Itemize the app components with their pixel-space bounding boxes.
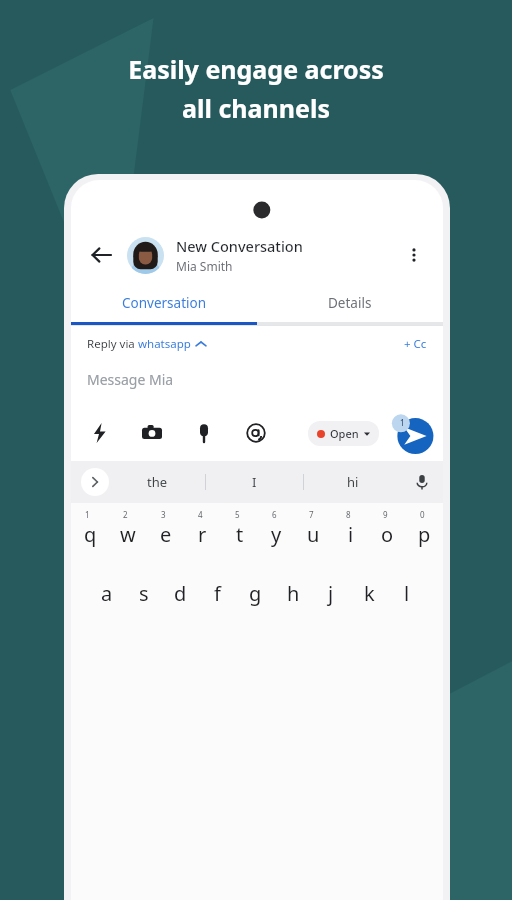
staticText: I bbox=[252, 473, 257, 491]
button[interactable]: j bbox=[312, 565, 350, 621]
staticText: o bbox=[381, 521, 394, 548]
staticText: Reply via bbox=[87, 336, 138, 352]
button[interactable]: s bbox=[125, 565, 162, 621]
button[interactable]: d bbox=[162, 565, 199, 621]
staticText: New Conversation bbox=[176, 236, 303, 256]
staticText: whatsapp bbox=[138, 336, 191, 352]
staticText: Mia Smith bbox=[176, 258, 233, 274]
button[interactable]: Camera bbox=[139, 420, 165, 446]
button[interactable]: a bbox=[88, 565, 125, 621]
staticText: 0 bbox=[420, 509, 425, 520]
button[interactable]: Send bbox=[389, 411, 433, 455]
button[interactable]: h bbox=[274, 565, 312, 621]
button[interactable]: the bbox=[109, 461, 205, 503]
button[interactable]: r bbox=[184, 503, 221, 565]
staticText: g bbox=[249, 580, 262, 607]
staticText: 9 bbox=[383, 509, 388, 520]
staticText: Open bbox=[330, 426, 359, 441]
staticText: l bbox=[404, 580, 410, 607]
staticText: 3 bbox=[161, 509, 166, 520]
staticText: d bbox=[174, 580, 187, 607]
staticText: 4 bbox=[198, 509, 203, 520]
staticText: i bbox=[348, 521, 354, 548]
staticText: y bbox=[271, 521, 282, 548]
button[interactable]: g bbox=[236, 565, 274, 621]
button[interactable]: k bbox=[350, 565, 388, 621]
button[interactable]: Details bbox=[257, 284, 443, 322]
staticText: h bbox=[287, 580, 300, 607]
staticText: the bbox=[147, 473, 168, 491]
staticText: w bbox=[120, 521, 136, 548]
button[interactable]: Back bbox=[83, 237, 119, 273]
staticText: hi bbox=[347, 473, 359, 491]
button[interactable]: u bbox=[295, 503, 332, 565]
button[interactable]: q bbox=[71, 503, 109, 565]
button[interactable]: Open bbox=[308, 421, 379, 446]
staticText: 6 bbox=[272, 509, 277, 520]
button[interactable]: Voice input bbox=[401, 461, 443, 503]
staticText: 8 bbox=[346, 509, 351, 520]
button[interactable]: l bbox=[388, 565, 426, 621]
staticText: r bbox=[198, 521, 207, 548]
button[interactable]: Mention bbox=[243, 420, 269, 446]
staticText: e bbox=[160, 521, 172, 548]
staticText: Message Mia bbox=[87, 370, 174, 389]
button[interactable]: Quick reply bbox=[87, 420, 113, 446]
button[interactable]: o bbox=[369, 503, 406, 565]
staticText: k bbox=[364, 580, 375, 607]
staticText: f bbox=[214, 580, 221, 607]
button[interactable]: Conversation bbox=[71, 284, 257, 322]
button[interactable]: Reply via bbox=[87, 336, 206, 352]
button[interactable]: hi bbox=[304, 461, 401, 503]
staticText: s bbox=[139, 580, 149, 607]
staticText: 2 bbox=[123, 509, 128, 520]
button[interactable]: p bbox=[406, 503, 443, 565]
staticText: Conversation bbox=[122, 294, 206, 312]
staticText: j bbox=[328, 580, 334, 607]
staticText: 5 bbox=[235, 509, 240, 520]
staticText: p bbox=[418, 521, 431, 548]
staticText: 1 bbox=[85, 509, 90, 520]
button[interactable]: + Cc bbox=[404, 336, 427, 352]
staticText: Details bbox=[328, 294, 372, 312]
button[interactable]: f bbox=[199, 565, 236, 621]
button[interactable]: I bbox=[206, 461, 303, 503]
staticText: u bbox=[307, 521, 320, 548]
staticText: q bbox=[84, 521, 97, 548]
staticText: a bbox=[101, 580, 113, 607]
button[interactable]: e bbox=[147, 503, 184, 565]
staticText: 7 bbox=[309, 509, 314, 520]
staticText: Easily engage across bbox=[128, 52, 384, 86]
button[interactable]: More options bbox=[397, 238, 431, 272]
staticText: + Cc bbox=[404, 336, 427, 352]
button[interactable]: Attach file bbox=[191, 420, 217, 446]
button[interactable]: t bbox=[221, 503, 258, 565]
button[interactable]: Expand toolbar bbox=[81, 468, 109, 496]
button[interactable]: w bbox=[109, 503, 147, 565]
staticText: all channels bbox=[182, 91, 330, 125]
staticText: t bbox=[236, 521, 244, 548]
button[interactable]: i bbox=[332, 503, 369, 565]
staticText: 1 bbox=[400, 417, 405, 428]
button[interactable]: y bbox=[258, 503, 295, 565]
